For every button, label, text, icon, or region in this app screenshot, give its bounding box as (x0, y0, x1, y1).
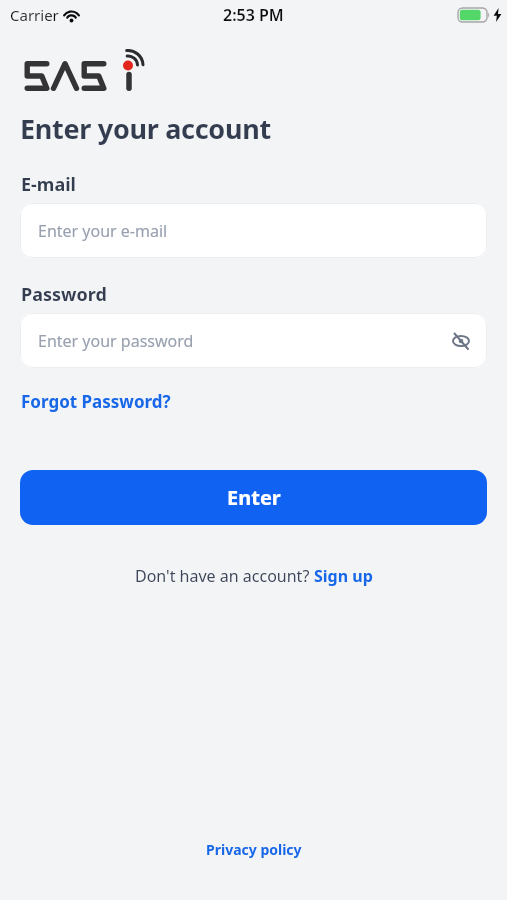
staticText: Don't have an account? (135, 565, 314, 587)
button[interactable]: Privacy policy (206, 840, 302, 859)
button[interactable]: Forgot Password? (21, 390, 171, 413)
button[interactable]: Enter your e-mail (20, 203, 487, 258)
button[interactable]: Enter (20, 470, 487, 525)
staticText: Password (21, 282, 107, 307)
staticText: Enter your e-mail (38, 220, 168, 242)
staticText: Enter your password (38, 330, 194, 352)
button[interactable]: Sign up (314, 565, 373, 587)
staticText: E-mail (21, 172, 76, 197)
staticText: Enter (227, 484, 281, 511)
staticText: Enter your account (20, 110, 271, 147)
staticText: Carrier (10, 5, 59, 25)
button[interactable]: Enter your password (20, 313, 487, 368)
staticText: 2:53 PM (223, 4, 284, 26)
